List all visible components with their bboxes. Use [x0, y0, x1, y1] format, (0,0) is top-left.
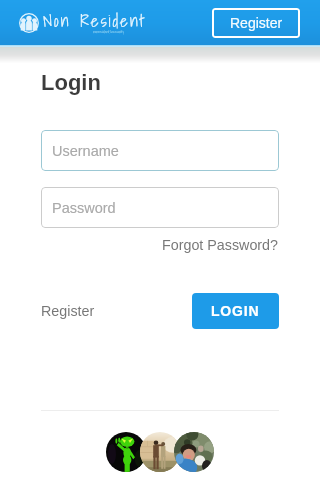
staticText: Forgot Password? — [162, 237, 279, 253]
staticText: Register — [230, 15, 283, 31]
button[interactable]: Register — [41, 303, 95, 319]
button[interactable]: Username — [41, 130, 279, 171]
staticText: Register — [41, 303, 95, 319]
staticText: Password — [52, 200, 116, 216]
button[interactable]: Member avatar — [106, 432, 146, 472]
button[interactable]: Register — [212, 8, 300, 38]
button[interactable]: Member avatar — [174, 432, 214, 472]
staticText: LOGIN — [211, 303, 260, 319]
button[interactable]: Member avatar — [140, 432, 180, 472]
staticText: nonresident.community — [93, 28, 124, 34]
button[interactable]: Password — [41, 187, 279, 228]
button[interactable]: Forgot Password? — [162, 237, 279, 253]
staticText: Login — [41, 70, 101, 95]
staticText: Username — [52, 143, 119, 159]
button[interactable]: LOGIN — [192, 293, 279, 329]
staticText: Non Resident — [43, 7, 147, 34]
other: Non Resident logo — [19, 13, 39, 33]
